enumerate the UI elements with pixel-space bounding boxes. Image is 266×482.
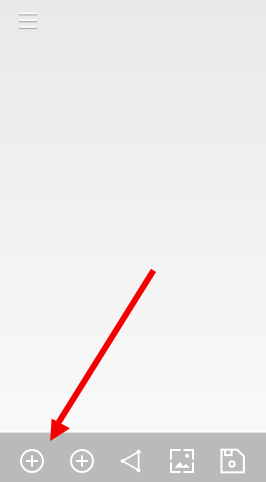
button[interactable]: Add (20, 433, 44, 482)
button[interactable]: Share (120, 433, 144, 482)
button[interactable]: Add text (70, 433, 94, 482)
button[interactable]: Photos (170, 433, 194, 482)
button[interactable]: Menu (9, 5, 47, 37)
button[interactable]: Save (220, 433, 244, 482)
